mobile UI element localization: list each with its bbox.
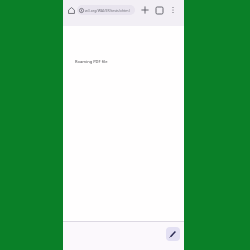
button[interactable]: Compose	[166, 227, 180, 241]
staticText: Roaming PDF file	[75, 59, 108, 64]
button[interactable]: Home	[65, 4, 77, 16]
button[interactable]: Switch tabs	[153, 4, 165, 16]
button[interactable]: New tab	[139, 4, 151, 16]
button[interactable]: w3.org/WAI/ER/tests/xhtml	[77, 5, 135, 15]
button[interactable]: More options	[167, 4, 179, 16]
staticText: w3.org/WAI/ER/tests/xhtml	[85, 8, 130, 13]
